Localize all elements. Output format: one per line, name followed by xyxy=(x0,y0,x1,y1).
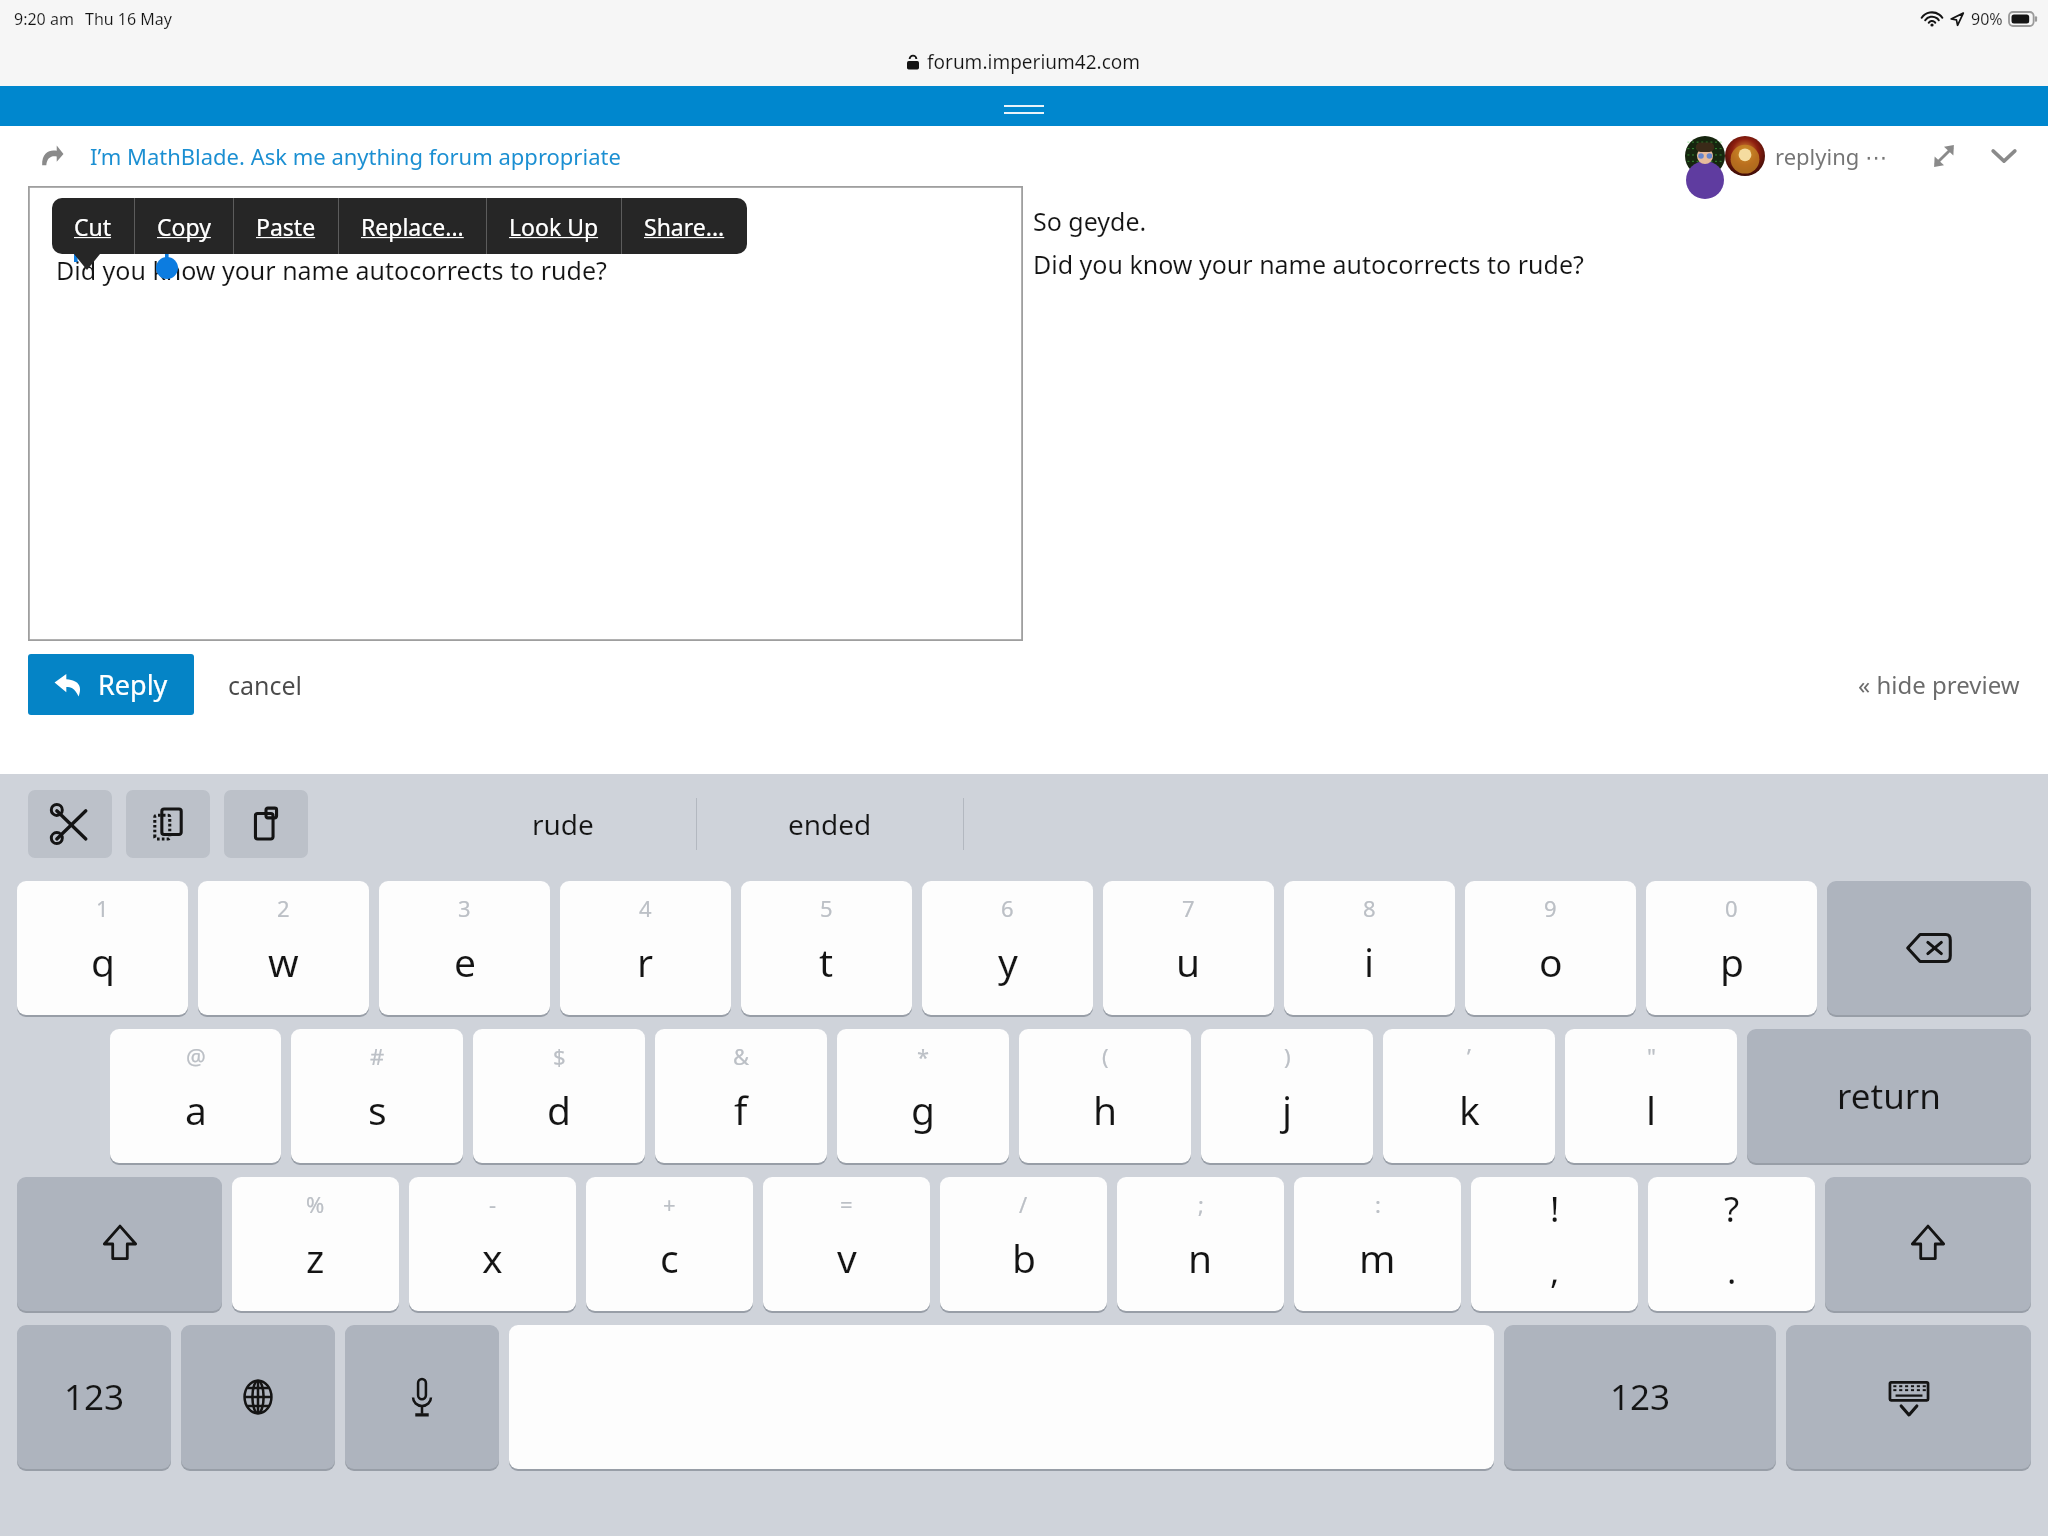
staticText: v xyxy=(837,1231,857,1284)
button[interactable]: Cut xyxy=(52,198,134,254)
button[interactable]: ( xyxy=(1019,1029,1191,1163)
staticText: 9:20 am xyxy=(14,8,74,30)
button[interactable]: Expand xyxy=(1926,138,1962,174)
button[interactable]: Switch keyboard xyxy=(181,1325,335,1469)
button[interactable]: Look Up xyxy=(487,198,621,254)
button[interactable]: cancel xyxy=(228,668,303,702)
button[interactable]: 1 xyxy=(17,881,188,1015)
button[interactable]: Copy xyxy=(126,790,210,858)
staticText: " xyxy=(1647,1041,1656,1071)
button[interactable]: Reply to topic xyxy=(28,132,74,180)
button[interactable]: 7 xyxy=(1103,881,1274,1015)
staticText: y xyxy=(998,935,1018,988)
button[interactable]: Dictate xyxy=(345,1325,499,1469)
button[interactable]: Cut xyxy=(28,790,112,858)
button[interactable]: % xyxy=(232,1177,399,1311)
button[interactable]: @ xyxy=(110,1029,281,1163)
button[interactable]: Paste xyxy=(234,198,338,254)
button[interactable]: $ xyxy=(473,1029,645,1163)
button[interactable]: ! xyxy=(1471,1177,1638,1311)
staticText: ) xyxy=(1284,1041,1291,1071)
button[interactable]: Shift xyxy=(1825,1177,2031,1311)
staticText: Paste xyxy=(256,211,316,242)
staticText: ’ xyxy=(1467,1041,1471,1071)
staticText: ! xyxy=(1550,1185,1560,1233)
button[interactable]: 123 xyxy=(17,1325,171,1469)
staticText: t xyxy=(819,935,834,988)
button[interactable]: - xyxy=(409,1177,576,1311)
staticText: Did you know your name autocorrects to r… xyxy=(1033,247,1584,281)
staticText: f xyxy=(734,1083,748,1136)
button[interactable]: 6 xyxy=(922,881,1093,1015)
button[interactable]: 8 xyxy=(1284,881,1455,1015)
button[interactable]: Collapse xyxy=(1986,138,2022,174)
button[interactable]: 4 xyxy=(560,881,731,1015)
button[interactable]: * xyxy=(837,1029,1009,1163)
button[interactable]: 2 xyxy=(198,881,369,1015)
staticText: 7 xyxy=(1182,893,1195,923)
button[interactable]: rude xyxy=(430,805,696,843)
staticText: x xyxy=(482,1231,503,1284)
button[interactable]: return xyxy=(1747,1029,2031,1163)
button[interactable]: + xyxy=(586,1177,753,1311)
button[interactable]: 3 xyxy=(379,881,550,1015)
staticText: 3 xyxy=(458,893,471,923)
button[interactable]: 9 xyxy=(1465,881,1636,1015)
staticText: 8 xyxy=(1363,893,1376,923)
button[interactable]: Shift xyxy=(17,1177,222,1311)
button[interactable]: / xyxy=(940,1177,1107,1311)
button[interactable]: 0 xyxy=(1646,881,1817,1015)
button[interactable]: Reply xyxy=(28,654,194,715)
staticText: Did you know your name autocorrects to r… xyxy=(56,253,607,287)
staticText: n xyxy=(1188,1231,1213,1284)
button[interactable]: ? xyxy=(1648,1177,1815,1311)
staticText: j xyxy=(1282,1083,1293,1136)
button[interactable]: Delete xyxy=(1827,881,2031,1015)
staticText: Thu 16 May xyxy=(85,8,172,30)
staticText: & xyxy=(733,1041,750,1071)
button[interactable]: ; xyxy=(1117,1177,1284,1311)
button[interactable]: Paste xyxy=(224,790,308,858)
staticText: s xyxy=(368,1083,387,1136)
staticText: ; xyxy=(1198,1189,1204,1219)
staticText: w xyxy=(268,935,299,988)
staticText: - xyxy=(489,1189,497,1219)
staticText: 6 xyxy=(1001,893,1014,923)
button[interactable]: forum.imperium42.com xyxy=(0,38,2048,86)
button[interactable]: & xyxy=(655,1029,827,1163)
staticText: So geyde. xyxy=(1033,204,1147,238)
staticText: ( xyxy=(1102,1041,1109,1071)
button[interactable]: = xyxy=(763,1177,930,1311)
button[interactable]: ) xyxy=(1201,1029,1373,1163)
staticText: Copy xyxy=(157,211,211,242)
staticText: 2 xyxy=(277,893,290,923)
staticText: e xyxy=(454,935,476,988)
button[interactable]: « hide preview xyxy=(1858,668,2020,701)
staticText: 123 xyxy=(1610,1373,1671,1421)
staticText: a xyxy=(185,1083,207,1136)
staticText: So xyxy=(56,210,92,244)
button[interactable]: ’ xyxy=(1383,1029,1555,1163)
button[interactable]: : xyxy=(1294,1177,1461,1311)
button[interactable]: ended xyxy=(697,805,963,843)
button[interactable]: I’m MathBlade. Ask me anything forum app… xyxy=(90,141,621,171)
staticText: 5 xyxy=(820,893,833,923)
button[interactable]: Hide keyboard xyxy=(1786,1325,2031,1469)
staticText: Share... xyxy=(644,211,725,242)
staticText: Reply xyxy=(98,666,168,703)
staticText: geyde xyxy=(92,210,164,244)
staticText: m xyxy=(1359,1231,1396,1284)
staticText: # xyxy=(370,1041,385,1071)
staticText: z xyxy=(306,1231,325,1284)
staticText: r xyxy=(637,935,654,988)
staticText: + xyxy=(663,1189,676,1219)
button[interactable]: 123 xyxy=(1504,1325,1776,1469)
button[interactable]: Share... xyxy=(622,198,747,254)
button[interactable]: 5 xyxy=(741,881,912,1015)
button[interactable]: " xyxy=(1565,1029,1737,1163)
button[interactable]: Replace... xyxy=(339,198,486,254)
staticText: return xyxy=(1837,1072,1941,1120)
button[interactable]: # xyxy=(291,1029,463,1163)
button[interactable]: Copy xyxy=(135,198,233,254)
